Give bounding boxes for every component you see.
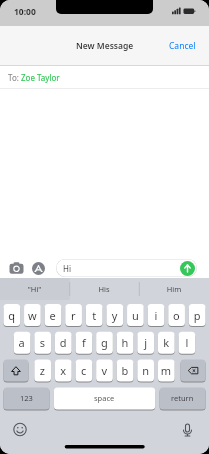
button[interactable]: [32, 262, 45, 275]
button[interactable]: [9, 262, 24, 274]
staticText: New Message: [76, 40, 134, 52]
button[interactable]: [180, 261, 195, 276]
button[interactable]: Hi: [56, 259, 197, 277]
staticText: 10:00: [14, 6, 36, 18]
button[interactable]: 10:00: [14, 6, 36, 18]
staticText: Zoe Taylor: [21, 72, 60, 83]
staticText: To:: [8, 72, 21, 83]
button[interactable]: To:: [0, 66, 209, 89]
button[interactable]: Cancel: [169, 40, 196, 52]
button[interactable]: [0, 278, 209, 454]
staticText: Cancel: [169, 40, 196, 52]
staticText: Hi: [63, 263, 71, 274]
